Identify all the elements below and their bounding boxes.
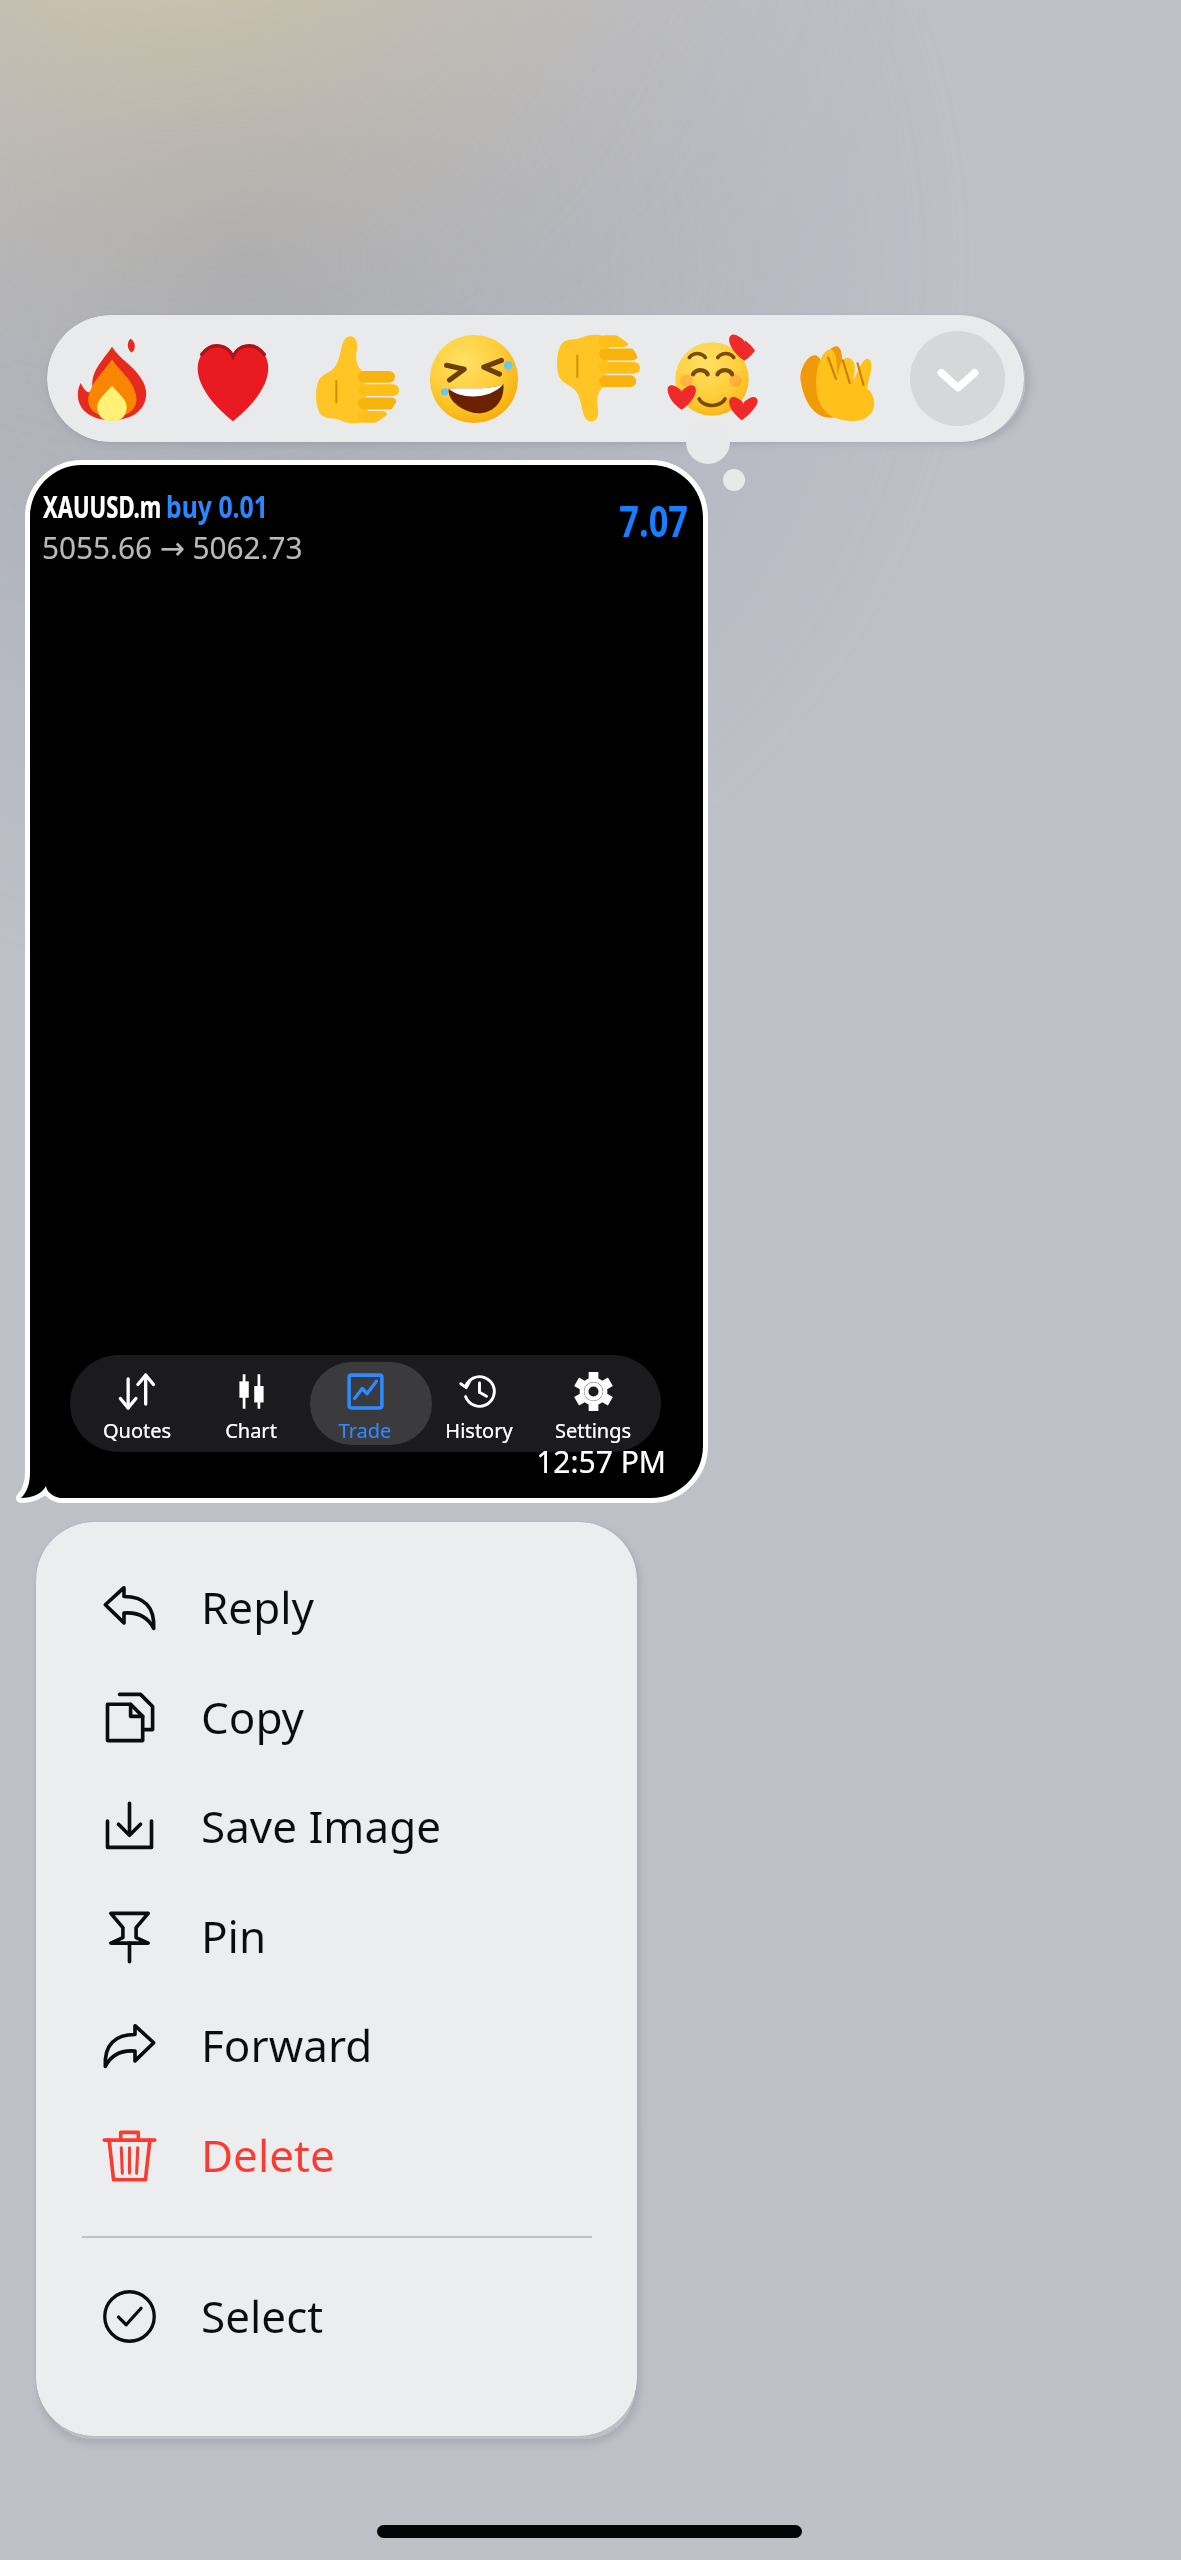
staticText: 12:57 PM: [408, 1441, 666, 1482]
staticText: History: [422, 1417, 536, 1444]
staticText: Settings: [536, 1417, 650, 1444]
staticText: 5055.66 → 5062.73: [42, 526, 303, 568]
staticText: Quotes: [80, 1417, 194, 1444]
button[interactable]: Reply: [36, 1552, 637, 1662]
staticText: Pin: [201, 1906, 267, 1966]
button[interactable]: History: [422, 1355, 536, 1452]
button[interactable]: Forward: [36, 1990, 637, 2100]
button[interactable]: Select: [36, 2261, 637, 2371]
button[interactable]: Thumbs up: [304, 330, 402, 428]
button[interactable]: Delete: [36, 2100, 637, 2210]
staticText: Copy: [201, 1687, 305, 1747]
staticText: Forward: [201, 2015, 373, 2075]
staticText: Chart: [194, 1417, 308, 1444]
button[interactable]: Thumbs down: [545, 330, 643, 428]
button[interactable]: Laughing: [425, 330, 523, 428]
button[interactable]: Settings: [536, 1355, 650, 1452]
button[interactable]: Quotes: [80, 1355, 194, 1452]
staticText: 7.07: [480, 491, 688, 550]
staticText: Delete: [201, 2125, 335, 2185]
button[interactable]: Chart: [194, 1355, 308, 1452]
staticText: Select: [201, 2286, 324, 2346]
button[interactable]: Copy: [36, 1662, 637, 1772]
staticText: XAUUSD.m: [43, 485, 162, 527]
button[interactable]: Pin: [36, 1881, 637, 1991]
button[interactable]: Fire: [63, 330, 161, 428]
button[interactable]: Save Image: [36, 1771, 637, 1881]
button[interactable]: Clap: [787, 330, 885, 428]
staticText: Reply: [201, 1577, 315, 1637]
staticText: Save Image: [201, 1796, 442, 1856]
button[interactable]: Heart: [184, 330, 282, 428]
button[interactable]: More reactions: [910, 331, 1005, 426]
button[interactable]: Trade: [308, 1355, 422, 1452]
staticText: buy 0.01: [166, 485, 268, 527]
staticText: Trade: [308, 1417, 422, 1444]
button[interactable]: Smiling face: [666, 330, 764, 428]
